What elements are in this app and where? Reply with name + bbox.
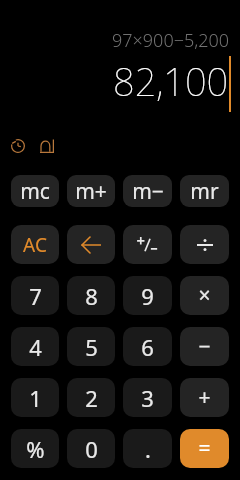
staticText: + [198,383,211,412]
button[interactable]: 0 [67,429,115,468]
staticText: . [145,434,151,464]
button[interactable]: mr [180,175,229,207]
staticText: 4 [29,332,42,362]
button[interactable]: 2 [67,378,115,417]
button[interactable]: × [180,276,229,315]
button[interactable]: 9 [123,276,172,315]
button[interactable]: 1 [11,378,59,417]
button[interactable]: AC [11,225,59,264]
staticText: 3 [141,383,154,413]
staticText: − [198,332,211,361]
staticText: 9 [141,281,154,311]
button[interactable]: m− [123,175,172,207]
button[interactable]: 3 [123,378,172,417]
button[interactable]: 8 [67,276,115,315]
button[interactable]: mc [11,175,59,207]
button[interactable]: + [180,378,229,417]
button[interactable]: History [10,138,26,154]
button[interactable]: = [180,429,229,468]
staticText: 82,100 [113,55,229,107]
staticText: % [26,434,45,464]
button[interactable]: Backspace [67,225,115,264]
button[interactable]: 6 [123,327,172,366]
staticText: 1 [29,383,42,413]
staticText: 2 [85,383,98,413]
button[interactable]: Divide [180,225,229,264]
button[interactable]: 5 [67,327,115,366]
staticText: 97×900−5,200 [112,28,230,53]
staticText: m− [132,177,164,206]
staticText: 5 [85,332,98,362]
button[interactable]: m+ [67,175,115,207]
staticText: 0 [85,434,98,464]
staticText: m+ [75,177,107,206]
staticText: mr [190,177,219,206]
button[interactable]: 4 [11,327,59,366]
button[interactable]: Toggle sign [123,225,172,264]
staticText: AC [23,232,47,258]
staticText: = [198,434,211,463]
staticText: 8 [85,281,98,311]
staticText: 6 [141,332,154,362]
staticText: mc [20,177,50,206]
button[interactable]: . [123,429,172,468]
staticText: 7 [29,281,42,311]
button[interactable]: Graph [39,138,55,154]
button[interactable]: − [180,327,229,366]
staticText: × [198,281,211,310]
button[interactable]: % [11,429,59,468]
button[interactable]: 7 [11,276,59,315]
